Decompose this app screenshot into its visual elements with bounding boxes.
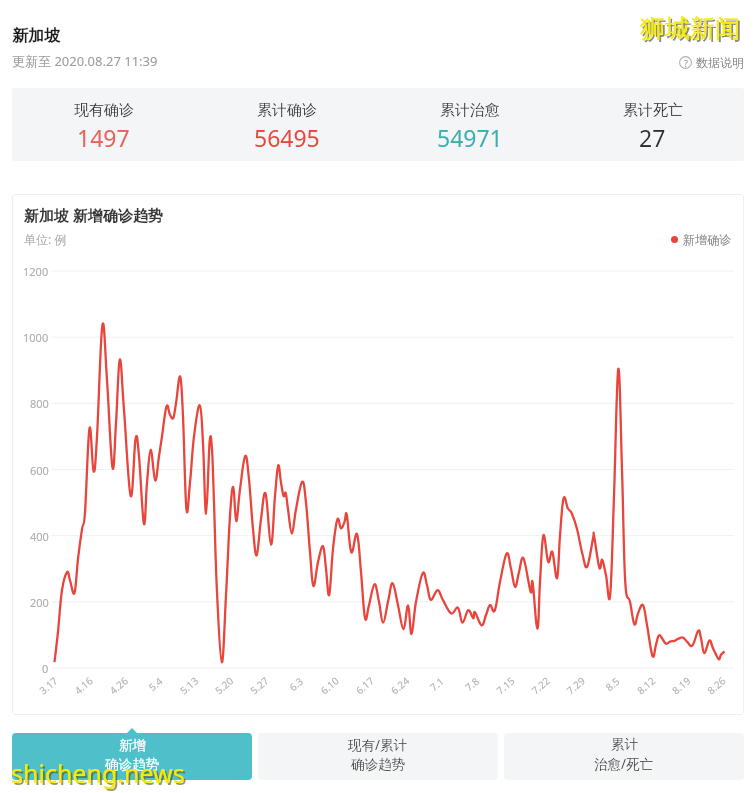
staticText: ?	[684, 57, 688, 69]
button[interactable]: 新增	[12, 733, 252, 780]
staticText: 现有/累计	[348, 736, 408, 754]
button[interactable]: 累计治愈	[378, 88, 561, 161]
staticText: 新加坡 新增确诊趋势	[24, 205, 163, 225]
staticText: 27	[639, 122, 666, 153]
staticText: 更新至 2020.08.27 11:39	[12, 52, 158, 70]
staticText: 累计确诊	[257, 101, 317, 120]
staticText: 确诊趋势	[351, 756, 405, 773]
staticText: 累计治愈	[440, 101, 500, 120]
staticText: 54971	[437, 122, 503, 153]
staticText: 累计	[611, 736, 638, 753]
staticText: 确诊趋势	[105, 756, 159, 773]
button[interactable]: 累计	[504, 733, 744, 780]
staticText: 狮城新闻	[640, 13, 740, 44]
staticText: 新增	[119, 737, 146, 754]
button[interactable]: 现有/累计	[258, 733, 498, 780]
other: 数据说明	[679, 56, 692, 69]
button[interactable]: 现有确诊	[12, 88, 195, 161]
staticText: 新增确诊	[683, 232, 731, 247]
staticText: 累计死亡	[623, 101, 683, 120]
staticText: shicheng.news	[11, 756, 185, 790]
staticText: 56495	[254, 122, 320, 153]
staticText: 1497	[77, 122, 130, 153]
staticText: 数据说明	[696, 55, 744, 70]
staticText: shicheng.news	[13, 758, 187, 792]
button[interactable]: 数据说明	[679, 55, 744, 70]
button[interactable]: 累计死亡	[561, 88, 744, 161]
staticText: 治愈/死亡	[594, 755, 654, 773]
staticText: 狮城新闻	[642, 15, 742, 46]
staticText: 单位: 例	[24, 231, 67, 247]
button[interactable]: 累计确诊	[195, 88, 378, 161]
staticText: 现有确诊	[74, 101, 134, 120]
staticText: 新加坡	[12, 26, 60, 46]
